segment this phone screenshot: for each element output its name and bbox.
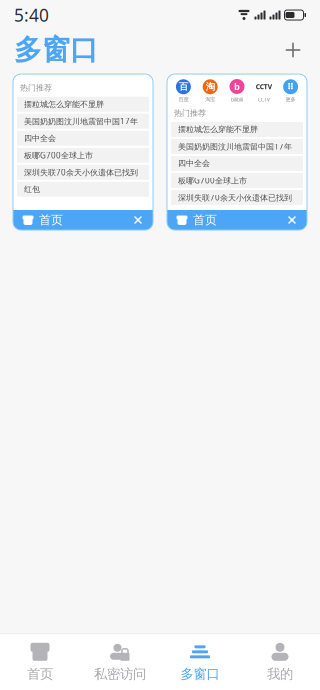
button[interactable]: New window — [276, 33, 310, 67]
staticText: 板哪G700全球上市 — [178, 175, 247, 186]
staticText: 深圳失联70余天小伙遗体已找到 — [178, 192, 292, 203]
staticText: 摆粒城怎么穿能不显胖 — [24, 99, 104, 109]
button[interactable]: 摆粒城怎么穿能不显胖 — [17, 97, 149, 112]
staticText: 四中全会 — [178, 158, 210, 168]
staticText: 淘宝 — [205, 96, 215, 103]
staticText: 5:40 — [14, 3, 49, 26]
button[interactable]: 首页 — [0, 634, 80, 690]
staticText: CCTV — [258, 96, 270, 103]
button[interactable]: Close window — [127, 209, 149, 231]
staticText: 百 — [179, 81, 188, 92]
button[interactable]: 深圳失联70余天小伙遗体已找到 — [171, 190, 303, 205]
staticText: 美国奶奶图汶川地震留中国17年 — [178, 141, 292, 152]
staticText: 板哪G700全球上市 — [24, 150, 93, 161]
staticText: 深圳失联70余天小伙遗体已找到 — [24, 167, 138, 178]
button[interactable]: 四中全会 — [17, 131, 149, 146]
staticText: CCTV — [256, 82, 272, 91]
staticText: 首页 — [39, 213, 63, 227]
staticText: 我的 — [267, 666, 293, 682]
staticText: 首页 — [27, 666, 53, 682]
staticText: 首页 — [193, 213, 217, 227]
button[interactable]: 私密访问 — [80, 634, 160, 690]
staticText: ⠿ — [287, 81, 294, 92]
button[interactable]: 我的 — [240, 634, 320, 690]
staticText: 更多 — [286, 96, 296, 103]
button[interactable]: 深圳失联70余天小伙遗体已找到 — [17, 165, 149, 180]
button[interactable]: b — [224, 79, 250, 103]
staticText: 四中全会 — [24, 133, 56, 143]
button[interactable]: 红包 — [17, 182, 149, 197]
staticText: bilibili — [231, 96, 243, 103]
button[interactable]: 板哪G700全球上市 — [17, 148, 149, 163]
button[interactable]: 百 — [170, 79, 197, 103]
staticText: 私密访问 — [94, 666, 146, 682]
staticText: 热门推荐 — [174, 108, 206, 118]
staticText: 多窗口 — [14, 33, 98, 67]
button[interactable] — [250, 79, 277, 103]
staticText: 多窗口 — [180, 666, 219, 682]
staticText: 红包 — [24, 184, 40, 194]
button[interactable]: 淘 — [197, 79, 224, 103]
button[interactable]: 美国奶奶图汶川地震留中国17年 — [171, 139, 303, 154]
staticText: 摆粒城怎么穿能不显胖 — [178, 124, 258, 134]
button[interactable]: 多窗口 — [160, 634, 240, 690]
button[interactable]: 四中全会 — [171, 156, 303, 171]
button[interactable]: ⠿ — [277, 79, 304, 103]
button[interactable]: 摆粒城怎么穿能不显胖 — [171, 122, 303, 137]
button[interactable]: 美国奶奶图汶川地震留中国17年 — [17, 114, 149, 129]
button[interactable]: 百 — [167, 74, 307, 230]
button[interactable]: Close window — [281, 209, 303, 231]
staticText: 淘 — [206, 81, 215, 92]
staticText: b — [234, 80, 240, 93]
staticText: 美国奶奶图汶川地震留中国17年 — [24, 116, 138, 127]
button[interactable]: 热门推荐 — [13, 74, 153, 230]
staticText: 百度 — [178, 96, 188, 103]
staticText: 热门推荐 — [20, 83, 52, 93]
button[interactable]: 板哪G700全球上市 — [171, 173, 303, 188]
